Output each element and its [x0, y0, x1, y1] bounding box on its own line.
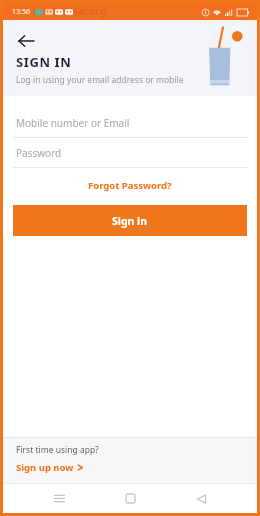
staticText: First time using app? — [16, 444, 99, 456]
staticText: Sign in — [112, 214, 148, 228]
staticText: Log in using your email address or mobil… — [16, 74, 184, 86]
staticText: Mobile number or Email — [16, 116, 130, 130]
staticText: 13:56 — [12, 7, 30, 17]
staticText: Password — [16, 146, 62, 160]
button[interactable]: Mobile number or Email — [3, 108, 257, 138]
staticText: SIGN IN — [16, 53, 72, 71]
button[interactable]: Back — [11, 26, 41, 56]
button[interactable]: Home — [115, 484, 145, 513]
staticText: Sign up now — [16, 461, 74, 474]
button[interactable]: Forgot Password? — [3, 179, 257, 192]
button[interactable]: Sign up now — [16, 461, 84, 474]
staticText: Forgot Password? — [88, 179, 172, 192]
staticText: hackedsa.org — [33, 3, 107, 18]
button[interactable]: Recent apps — [44, 484, 74, 513]
button[interactable]: Back — [186, 484, 216, 513]
button[interactable]: Sign in — [13, 205, 247, 236]
button[interactable]: Password — [3, 138, 257, 168]
